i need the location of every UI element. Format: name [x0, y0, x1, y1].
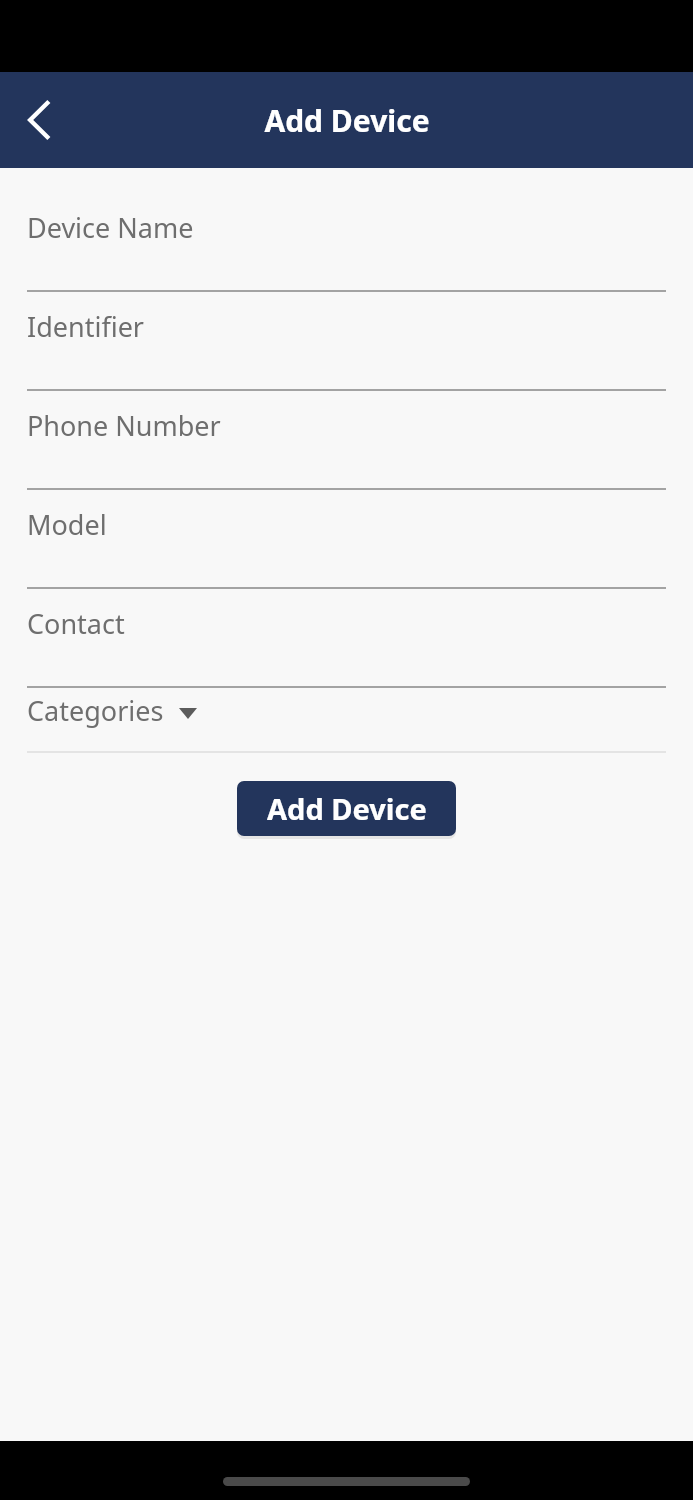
button[interactable]: Model	[0, 490, 693, 589]
staticText: Add Device	[267, 789, 427, 828]
button[interactable]: Back	[10, 91, 68, 149]
staticText: Contact	[27, 605, 125, 642]
button[interactable]: Identifier	[0, 292, 693, 391]
staticText: Identifier	[27, 308, 145, 345]
button[interactable]: Device Name	[0, 193, 693, 292]
button[interactable]: Categories	[0, 688, 693, 753]
staticText: Add Device	[264, 100, 430, 141]
button[interactable]: Add Device	[237, 781, 456, 836]
staticText: Model	[27, 506, 107, 543]
staticText: Phone Number	[27, 407, 221, 444]
button[interactable]: Phone Number	[0, 391, 693, 490]
button[interactable]: Contact	[0, 589, 693, 688]
staticText: Device Name	[27, 209, 194, 246]
staticText: Categories	[27, 692, 164, 729]
